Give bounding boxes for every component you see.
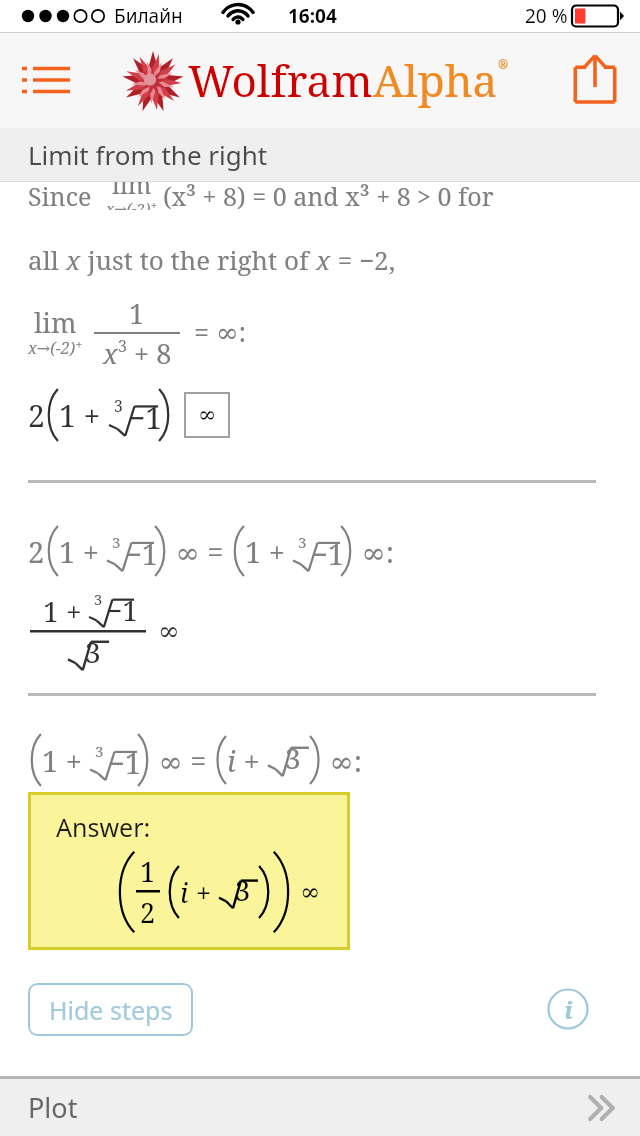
button[interactable]: Menu [18,52,74,108]
staticText: ∞ [158,616,180,646]
staticText: −1 [128,397,163,438]
staticText: ∞ [198,402,217,428]
staticText: −1 [106,591,138,629]
staticText: x→(−2)⁺ [28,337,82,359]
staticText: 3 [114,395,123,416]
staticText: ∞ = [151,741,214,780]
staticText: 2 [28,532,45,571]
staticText: = ∞: [194,313,247,350]
staticText: + [189,874,219,911]
staticText: i [227,741,236,780]
staticText: 1 + [59,395,109,436]
staticText: 1 + [59,532,107,571]
staticText: all [28,242,66,277]
staticText: Wolfram [188,50,373,110]
staticText: 3 [285,739,301,777]
staticText: 3 [94,589,103,609]
staticText: + 8 [127,335,172,372]
staticText: −1 [125,534,159,573]
staticText: lim [112,167,152,201]
staticText: just to the right of [81,242,316,277]
staticText: ∞: [354,532,394,571]
staticText: 1 [129,295,145,332]
staticText: i [564,993,573,1026]
staticText: 3 [85,633,101,671]
staticText: −1 [108,743,142,782]
staticText: −1 [311,534,345,573]
staticText: x [103,335,118,372]
staticText: Alpha [373,50,498,110]
staticText: x→(−2)⁺ [106,198,157,210]
staticText: (x³ + 8) = 0 and x³ + 8 > 0 for [163,179,494,213]
staticText: ® [498,56,509,72]
staticText: 1 + [42,741,90,780]
staticText: x [66,242,81,277]
staticText: Билайн [114,3,183,29]
staticText: 1 + [43,592,89,630]
staticText: lim [34,304,77,341]
staticText: = −2, [331,242,396,277]
staticText: 3 [112,532,121,553]
staticText: 3 [118,335,127,357]
button[interactable]: Plot [0,1079,640,1136]
staticText: ∞ = [168,532,231,571]
button[interactable]: ∞ [184,392,230,438]
staticText: 3 [298,532,307,553]
staticText: 3 [235,872,251,909]
staticText: 16:04 [288,3,337,29]
button[interactable]: Share [566,51,624,109]
button[interactable]: Information [547,988,589,1030]
staticText: Hide steps [49,993,173,1027]
staticText: + [236,741,268,780]
staticText: ∞: [322,741,362,780]
staticText: ∞ [300,878,320,906]
staticText: 3 [95,741,104,762]
staticText: x [316,242,331,277]
staticText: Plot [28,1089,78,1126]
staticText: 1 + [245,532,293,571]
staticText: 1 [140,853,156,890]
staticText: i [180,874,189,911]
button[interactable]: Answer: [28,792,350,950]
button[interactable]: Hide steps [28,983,193,1036]
staticText: 2 [140,894,156,931]
staticText: Answer: [56,810,151,844]
staticText: Limit from the right [28,137,268,172]
staticText: Since [28,179,92,213]
staticText: 2 [28,395,45,436]
staticText: 20 % [525,3,568,29]
